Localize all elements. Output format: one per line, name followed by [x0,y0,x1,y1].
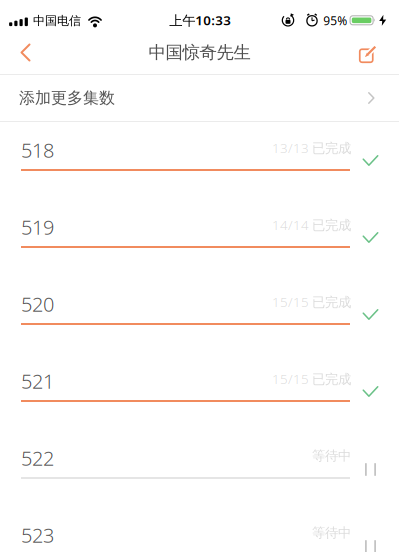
button[interactable]: 编辑 [351,37,384,70]
button[interactable]: 520 [0,276,399,353]
button[interactable]: 返回 [10,38,41,66]
staticText: 522 [21,445,54,471]
staticText: 中国惊奇先生 [148,42,250,63]
staticText: 上午10:33 [169,11,231,29]
staticText: 中国电信 [33,13,81,28]
button[interactable]: 518 [0,122,399,199]
staticText: 519 [21,214,54,240]
button[interactable]: 519 [0,199,399,276]
staticText: 521 [21,368,54,394]
staticText: 518 [21,137,54,163]
staticText: 15/15 已完成 [272,293,351,311]
staticText: 520 [21,291,54,317]
staticText: 等待中 [312,525,351,541]
button[interactable]: 521 [0,353,399,430]
staticText: 523 [21,522,54,548]
staticText: 95% [323,12,347,28]
button[interactable]: 523 [0,507,399,552]
button[interactable]: 522 [0,430,399,507]
staticText: 14/14 已完成 [272,216,351,234]
staticText: 等待中 [312,448,351,464]
button[interactable]: 添加更多集数 [0,75,399,121]
staticText: 13/13 已完成 [272,139,351,157]
staticText: 添加更多集数 [19,88,115,108]
staticText: 15/15 已完成 [272,370,351,388]
